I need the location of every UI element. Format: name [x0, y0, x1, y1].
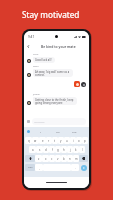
button[interactable]: The [66, 127, 83, 136]
staticText: d [45, 148, 47, 152]
staticText: x [45, 157, 47, 161]
staticText: ?123 [28, 166, 33, 169]
staticText: t [54, 139, 56, 143]
button[interactable]: u [64, 137, 70, 144]
button[interactable]: Backspace [79, 155, 88, 162]
staticText: Stay motivated [22, 9, 80, 20]
staticText: q [28, 139, 30, 143]
button[interactable]: n [67, 155, 73, 162]
button[interactable]: b [61, 155, 67, 162]
staticText: n [69, 157, 71, 161]
button[interactable]: j [67, 146, 73, 153]
button[interactable]: Symbols [25, 164, 35, 171]
button[interactable]: k [73, 146, 79, 153]
staticText: c [51, 157, 53, 161]
staticText: u [66, 139, 68, 143]
staticText: v [57, 157, 59, 161]
button[interactable]: Message input [34, 118, 84, 125]
button[interactable]: m [73, 155, 79, 162]
staticText: y [60, 139, 62, 143]
button[interactable]: Period [71, 164, 79, 171]
button[interactable]: x [42, 155, 49, 162]
button[interactable]: Send [81, 165, 87, 171]
button[interactable]: c [49, 155, 55, 162]
staticText: . [75, 166, 76, 170]
button[interactable]: Shift [25, 155, 35, 162]
staticText: r [48, 139, 50, 143]
button[interactable]: s [36, 146, 43, 153]
button[interactable]: v [55, 155, 61, 162]
staticText: o [78, 139, 80, 143]
button[interactable]: t [52, 137, 58, 144]
button[interactable]: o [76, 137, 82, 144]
staticText: Dana [33, 65, 39, 68]
button[interactable]: y [58, 137, 64, 144]
button[interactable]: p [82, 137, 88, 144]
staticText: w [34, 139, 37, 143]
button[interactable]: Comma [35, 164, 43, 171]
staticText: g [57, 148, 59, 152]
button[interactable]: q [25, 137, 32, 144]
staticText: s [39, 148, 41, 152]
staticText: a [32, 148, 34, 152]
staticText: I [40, 130, 41, 133]
staticText: Chris [33, 53, 39, 56]
staticText: Good luck all! [35, 58, 52, 62]
button[interactable]: Add attachment [27, 120, 30, 123]
staticText: m [75, 157, 78, 161]
staticText: e [42, 139, 44, 143]
button[interactable]: f [49, 146, 55, 153]
staticText: 9:41 [28, 35, 35, 39]
staticText: Message [34, 120, 45, 123]
staticText: Getting close to the finish, keep going … [35, 98, 75, 104]
staticText: Ah wow, 'big wall' same as a contest. [35, 70, 71, 76]
staticText: f [52, 148, 53, 152]
staticText: i [73, 139, 74, 143]
button[interactable]: e [39, 137, 46, 144]
staticText: k [75, 148, 77, 152]
staticText: The [72, 130, 77, 133]
staticText: h [63, 148, 65, 152]
staticText: p [84, 139, 86, 143]
staticText: I'm [56, 130, 60, 133]
button[interactable]: w [32, 137, 39, 144]
button[interactable]: d [43, 146, 49, 153]
button[interactable]: I'm [49, 127, 66, 136]
button[interactable]: g [55, 146, 61, 153]
button[interactable]: i [70, 137, 76, 144]
staticText: Jordan [33, 93, 40, 96]
button[interactable]: Back [24, 42, 33, 51]
button[interactable]: r [46, 137, 52, 144]
staticText: z [38, 157, 40, 161]
button[interactable]: l [79, 146, 85, 153]
staticText: l [82, 148, 83, 152]
button[interactable]: h [61, 146, 67, 153]
staticText: j [70, 148, 71, 152]
staticText: Be kind to your mate [41, 44, 76, 49]
button[interactable]: a [29, 146, 36, 153]
button[interactable]: z [35, 155, 42, 162]
staticText: b [63, 157, 65, 161]
staticText: , [39, 166, 40, 170]
